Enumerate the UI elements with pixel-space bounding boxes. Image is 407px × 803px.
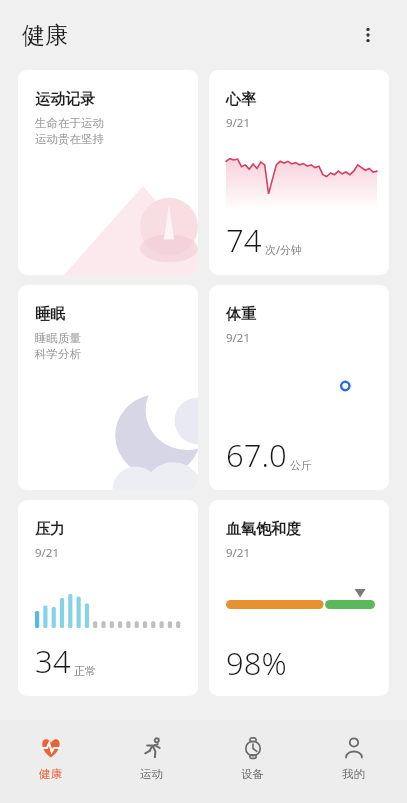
staticText: 9/21 (226, 115, 251, 131)
staticText: 心率 (226, 90, 256, 109)
staticText: 血氧饱和度 (226, 520, 301, 539)
staticText: 正常 (74, 664, 96, 678)
staticText: 我的 (342, 767, 365, 781)
staticText: 健康 (22, 21, 68, 50)
button[interactable]: 健康 (0, 720, 101, 803)
button[interactable]: 血氧饱和度 (209, 500, 389, 696)
button[interactable]: More options (351, 18, 385, 52)
staticText: 次/分钟 (265, 242, 303, 257)
staticText: 科学分析 (35, 347, 81, 361)
staticText: 设备 (241, 767, 264, 781)
staticText: 67.0 (226, 434, 287, 476)
staticText: 74 (226, 219, 262, 261)
staticText: 98% (226, 642, 287, 684)
staticText: 9/21 (226, 330, 251, 346)
staticText: 健康 (39, 767, 62, 781)
button[interactable]: 我的 (303, 720, 404, 803)
staticText: 体重 (226, 305, 256, 324)
button[interactable]: 运动 (101, 720, 202, 803)
staticText: 睡眠质量 (35, 331, 81, 345)
staticText: 压力 (35, 520, 65, 539)
staticText: 运动记录 (35, 90, 95, 109)
staticText: 9/21 (226, 545, 251, 561)
staticText: 公斤 (290, 458, 312, 472)
staticText: 生命在于运动 (35, 116, 104, 130)
staticText: 9/21 (35, 545, 60, 561)
button[interactable]: 压力 (18, 500, 198, 696)
staticText: 运动 (140, 767, 163, 781)
button[interactable]: 心率 (209, 70, 389, 275)
staticText: 34 (35, 640, 71, 682)
staticText: 运动贵在坚持 (35, 132, 104, 146)
button[interactable]: 睡眠 (18, 285, 198, 490)
button[interactable]: 运动记录 (18, 70, 198, 275)
button[interactable]: 体重 (209, 285, 389, 490)
staticText: 睡眠 (35, 305, 65, 324)
button[interactable]: 设备 (202, 720, 303, 803)
